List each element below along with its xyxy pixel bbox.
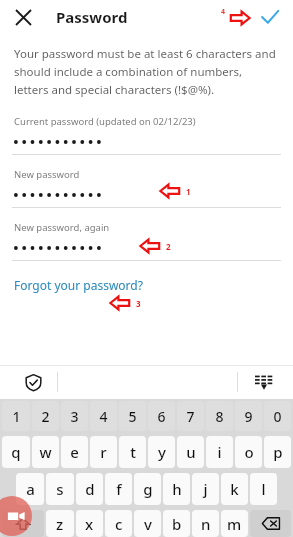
staticText: 3 — [70, 407, 79, 426]
staticText: 2 — [41, 407, 50, 426]
button[interactable]: v — [134, 510, 161, 537]
button[interactable]: d — [76, 473, 103, 505]
button[interactable]: 4 — [90, 401, 117, 431]
staticText: New password — [14, 168, 80, 181]
button[interactable]: c — [105, 510, 132, 537]
staticText: z — [56, 514, 64, 534]
button[interactable]: 0 — [264, 401, 291, 431]
button[interactable]: s — [46, 473, 74, 505]
staticText: 3 — [136, 298, 141, 309]
staticText: 0 — [273, 407, 282, 426]
other: Recording — [0, 496, 32, 536]
button[interactable]: 5 — [119, 401, 146, 431]
button[interactable]: Hide keyboard — [249, 367, 279, 397]
staticText: v — [144, 514, 152, 534]
staticText: Your password must be at least 6 charact… — [14, 46, 277, 97]
button[interactable]: 7 — [177, 401, 204, 431]
button[interactable]: u — [177, 436, 204, 468]
staticText: r — [100, 442, 107, 462]
staticText: q — [11, 442, 21, 462]
button[interactable]: o — [235, 436, 262, 468]
button[interactable]: Backspace — [250, 510, 291, 537]
button[interactable]: h — [163, 473, 190, 505]
button[interactable]: 9 — [235, 401, 262, 431]
staticText: x — [85, 514, 94, 534]
button[interactable]: 1 — [2, 401, 30, 431]
staticText: New password, again — [14, 221, 110, 234]
button[interactable]: p — [264, 436, 291, 468]
staticText: h — [172, 479, 182, 499]
button[interactable]: Shift — [2, 510, 44, 537]
button[interactable]: 6 — [148, 401, 175, 431]
button[interactable]: Close — [6, 0, 40, 34]
button[interactable]: Forgot your password? — [14, 277, 143, 293]
staticText: n — [201, 514, 211, 534]
staticText: d — [85, 479, 95, 499]
staticText: o — [244, 442, 254, 462]
button[interactable]: Save — [253, 0, 287, 34]
staticText: s — [56, 479, 64, 499]
staticText: 4 — [99, 407, 108, 426]
staticText: g — [143, 479, 153, 499]
staticText: 7 — [186, 407, 195, 426]
staticText: f — [116, 479, 122, 499]
button[interactable]: k — [221, 473, 248, 505]
button[interactable]: x — [76, 510, 103, 537]
staticText: Current password (updated on 02/12/23) — [14, 115, 196, 128]
button[interactable]: q — [2, 436, 30, 468]
staticText: l — [261, 479, 266, 499]
staticText: 4 — [221, 7, 226, 17]
staticText: k — [230, 479, 239, 499]
button[interactable]: Current password (updated on 02/12/23) — [0, 115, 293, 155]
button[interactable]: t — [119, 436, 146, 468]
button[interactable]: n — [192, 510, 219, 537]
staticText: 9 — [244, 407, 253, 426]
button[interactable]: f — [105, 473, 132, 505]
staticText: y — [158, 442, 166, 462]
button[interactable]: z — [46, 510, 74, 537]
staticText: j — [203, 479, 208, 499]
staticText: e — [70, 442, 79, 462]
button[interactable]: 8 — [206, 401, 233, 431]
button[interactable]: Password manager — [18, 367, 48, 397]
staticText: b — [172, 514, 182, 534]
staticText: 2 — [166, 241, 171, 252]
button[interactable]: New password, again — [0, 221, 293, 261]
staticText: 8 — [215, 407, 224, 426]
staticText: p — [273, 442, 283, 462]
staticText: t — [130, 442, 136, 462]
staticText: Password — [56, 7, 128, 27]
button[interactable]: 3 — [61, 401, 88, 431]
button[interactable]: l — [250, 473, 277, 505]
staticText: a — [26, 479, 35, 499]
button[interactable]: j — [192, 473, 219, 505]
staticText: Forgot your password? — [14, 277, 143, 293]
button[interactable]: g — [134, 473, 161, 505]
button[interactable]: m — [221, 510, 248, 537]
staticText: w — [39, 442, 52, 462]
button[interactable]: y — [148, 436, 175, 468]
button[interactable]: e — [61, 436, 88, 468]
button[interactable]: w — [32, 436, 59, 468]
button[interactable]: r — [90, 436, 117, 468]
button[interactable]: New password — [0, 168, 293, 208]
staticText: 6 — [157, 407, 166, 426]
button[interactable]: a — [16, 473, 44, 505]
staticText: 1 — [186, 186, 191, 197]
staticText: 1 — [12, 407, 21, 426]
staticText: m — [227, 514, 242, 534]
staticText: c — [115, 514, 123, 534]
staticText: u — [186, 442, 196, 462]
button[interactable]: 2 — [32, 401, 59, 431]
button[interactable]: b — [163, 510, 190, 537]
staticText: 5 — [128, 407, 137, 426]
staticText: i — [217, 442, 222, 462]
button[interactable]: i — [206, 436, 233, 468]
